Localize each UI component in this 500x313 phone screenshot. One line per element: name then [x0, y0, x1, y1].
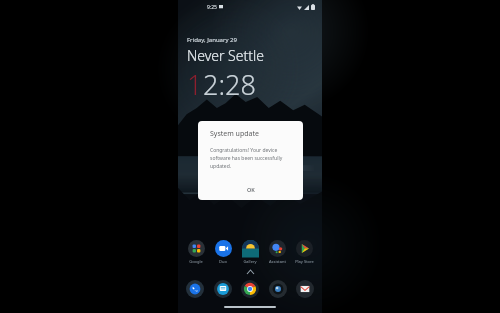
staticText: OK	[247, 186, 255, 193]
staticText: Gallery	[243, 259, 257, 264]
button[interactable]: Camera	[269, 280, 287, 298]
staticText: Duo	[219, 259, 227, 264]
button[interactable]: Phone	[186, 280, 204, 298]
staticText: Assistant	[269, 259, 286, 264]
staticText: 2:28	[203, 66, 256, 103]
button[interactable]: Chrome	[241, 280, 259, 298]
button[interactable]: Messages	[214, 280, 232, 298]
staticText: Friday, January 29	[187, 36, 237, 44]
button[interactable]: Gallery	[238, 240, 262, 264]
button[interactable]: Gmail	[296, 280, 314, 298]
button[interactable]: OK	[198, 180, 303, 198]
button[interactable]: Open app drawer	[247, 270, 254, 274]
button[interactable]: Play Store	[292, 240, 316, 264]
staticText: 9:25	[207, 4, 217, 11]
staticText: Never Settle	[187, 46, 264, 65]
staticText: Play Store	[295, 259, 314, 264]
staticText: 1	[187, 66, 203, 103]
button[interactable]: Duo	[211, 240, 235, 264]
staticText: Google	[189, 259, 203, 264]
button[interactable]: Google	[184, 240, 208, 264]
button[interactable]: Assistant	[265, 240, 289, 264]
staticText: System update	[210, 129, 259, 139]
staticText: Congratulations! Your device software ha…	[210, 147, 291, 170]
